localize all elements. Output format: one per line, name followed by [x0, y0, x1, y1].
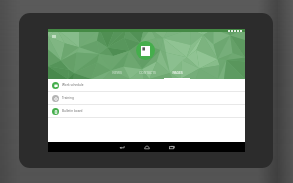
button[interactable]: CONTACTS	[132, 66, 162, 79]
button[interactable]: Home	[141, 142, 153, 152]
staticText: Training	[62, 96, 74, 100]
staticText: PAGES	[172, 70, 183, 75]
button[interactable]: Bulletin board	[48, 105, 245, 118]
button[interactable]: Work schedule	[48, 79, 245, 92]
button[interactable]: PAGES	[162, 66, 192, 79]
staticText: Bulletin board	[62, 109, 83, 113]
button[interactable]: Training	[48, 92, 245, 105]
button[interactable]: Menu	[50, 34, 57, 39]
staticText: Work schedule	[62, 83, 84, 87]
button[interactable]: New document	[136, 41, 155, 60]
button[interactable]: Recent apps	[166, 142, 178, 152]
staticText: NEWS	[112, 70, 122, 75]
button[interactable]: Back	[116, 142, 128, 152]
staticText: CONTACTS	[139, 70, 156, 75]
button[interactable]: NEWS	[102, 66, 132, 79]
